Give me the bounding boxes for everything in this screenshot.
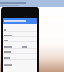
button[interactable] xyxy=(3,39,37,44)
button[interactable] xyxy=(3,56,37,61)
button[interactable] xyxy=(3,45,37,50)
button[interactable] xyxy=(3,34,37,39)
button[interactable] xyxy=(3,50,37,55)
button[interactable] xyxy=(3,28,37,33)
button[interactable] xyxy=(3,63,37,68)
button[interactable] xyxy=(3,18,37,24)
